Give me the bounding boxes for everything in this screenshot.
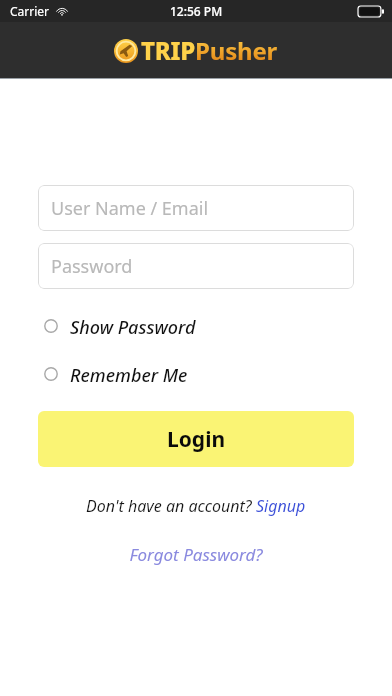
- button[interactable]: Remember Me: [38, 363, 354, 385]
- button[interactable]: Login: [38, 411, 354, 467]
- staticText: Carrier: [10, 3, 50, 19]
- staticText: TRIPPusher: [141, 34, 278, 67]
- staticText: Signup: [256, 495, 306, 517]
- staticText: Forgot Password?: [129, 543, 263, 566]
- staticText: Password: [51, 254, 133, 279]
- staticText: Don't have an account?: [86, 495, 256, 517]
- button[interactable]: Show Password: [38, 315, 354, 337]
- button[interactable]: Forgot Password?: [129, 543, 263, 566]
- staticText: User Name / Email: [51, 196, 209, 221]
- button[interactable]: Password: [38, 243, 354, 289]
- staticText: Show Password: [70, 315, 196, 337]
- button[interactable]: User Name / Email: [38, 185, 354, 231]
- staticText: Login: [167, 425, 226, 454]
- button[interactable]: Signup: [256, 495, 306, 517]
- staticText: Remember Me: [70, 363, 188, 385]
- staticText: 12:56 PM: [170, 3, 223, 19]
